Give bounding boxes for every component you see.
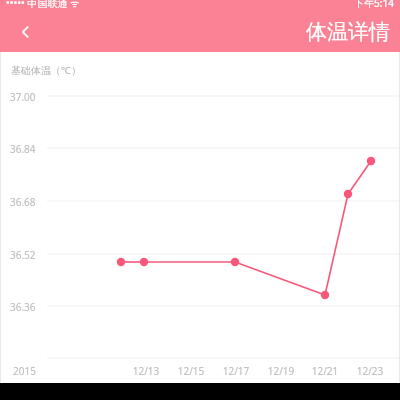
staticText: 2015 [13, 364, 36, 378]
staticText: 12/17 [221, 364, 251, 378]
staticText: ••••• 中国联通 ᯤ [6, 0, 80, 8]
staticText: 12/23 [355, 364, 385, 378]
staticText: 36.36 [10, 300, 36, 314]
staticText: 36.68 [10, 195, 36, 209]
button[interactable]: Back [8, 14, 44, 50]
staticText: 37.00 [10, 90, 36, 104]
staticText: 下午5:14 [354, 0, 394, 8]
staticText: 36.84 [10, 142, 36, 156]
staticText: 12/19 [266, 364, 296, 378]
staticText: 基础体温（℃） [11, 63, 81, 77]
staticText: 12/15 [176, 364, 206, 378]
staticText: 36.52 [10, 248, 36, 262]
staticText: 12/13 [131, 364, 161, 378]
staticText: 体温详情 [306, 19, 390, 45]
staticText: 12/21 [310, 364, 340, 378]
